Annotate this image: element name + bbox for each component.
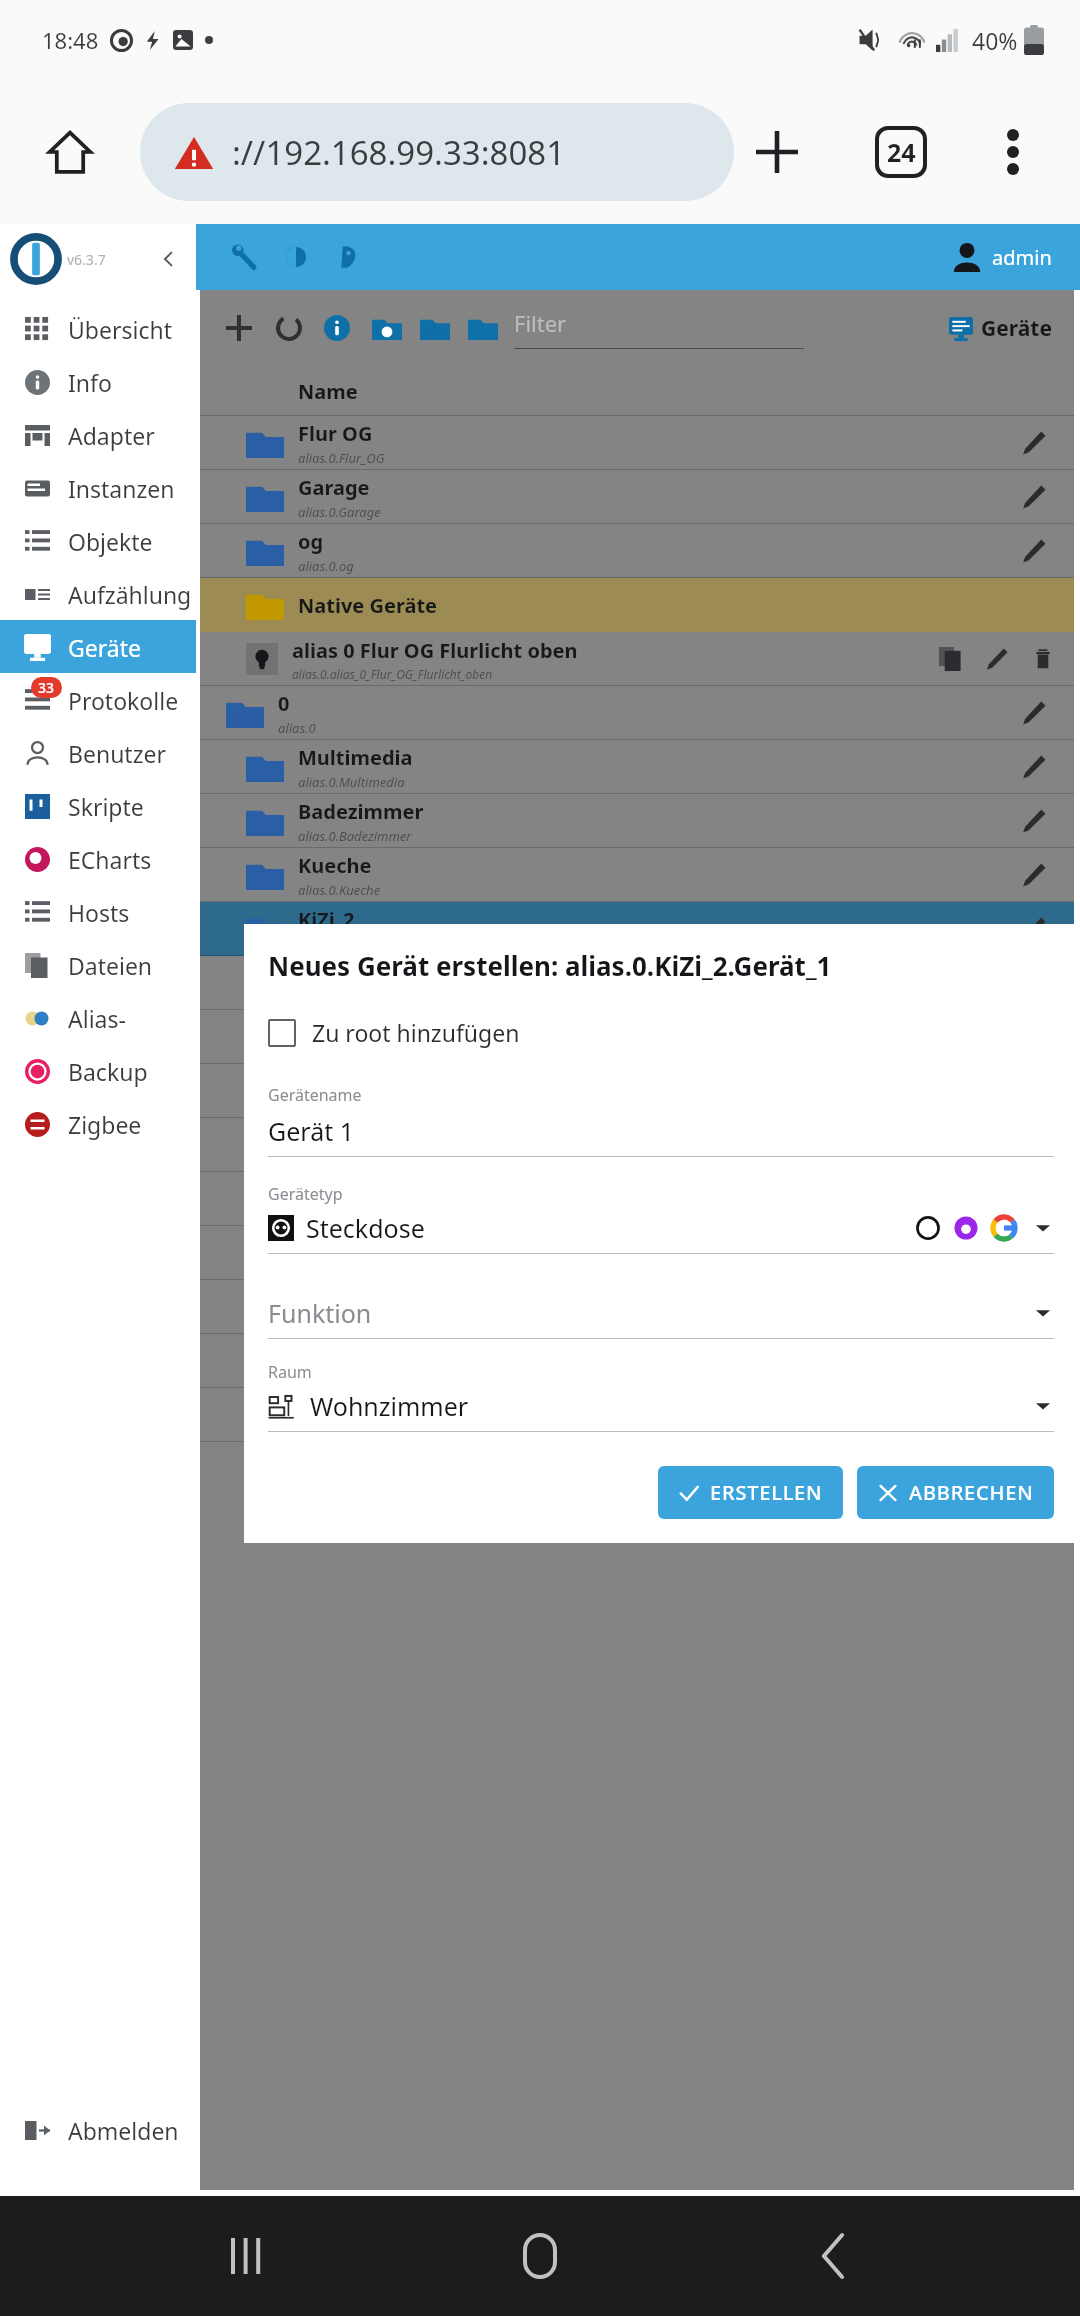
button[interactable]: Multimedia (200, 740, 1074, 794)
button[interactable]: Kueche (200, 848, 1074, 902)
button[interactable]: New tab (734, 109, 820, 195)
button[interactable]: Edit (1008, 1335, 1060, 1387)
button[interactable]: Edit (1008, 1173, 1060, 1225)
button[interactable]: 33 (0, 673, 196, 726)
button[interactable]: Edit og (1008, 525, 1060, 577)
staticText: Raum (268, 1361, 312, 1383)
staticText: Netzwerk (298, 1392, 396, 1419)
button[interactable]: Wohnzimmer (268, 1389, 1054, 1423)
button[interactable]: ERSTELLEN (658, 1466, 843, 1519)
button[interactable]: og (200, 524, 1074, 578)
button[interactable]: Benutzer (0, 726, 196, 779)
button[interactable]: Copy alias 0 Flur OG Flurlicht oben (928, 636, 974, 682)
button[interactable]: Edit (1008, 1281, 1060, 1333)
button[interactable]: More options (970, 109, 1056, 195)
staticText: alias 0 Flur OG Flurlicht oben (292, 637, 578, 664)
button[interactable]: Abmelden (0, 2103, 196, 2156)
button[interactable]: Instanzen (0, 461, 196, 514)
staticText: Flur OG (298, 420, 373, 447)
button[interactable]: Edit (200, 1280, 1074, 1334)
button[interactable]: Edit (200, 1334, 1074, 1388)
button[interactable]: Settings (222, 235, 266, 279)
staticText: 18:48 (42, 25, 99, 55)
button[interactable]: Edit (1008, 1119, 1060, 1171)
button[interactable]: Edit Kueche (1008, 849, 1060, 901)
button[interactable]: Fensterkontakt KiZi 2 2 (200, 956, 1074, 1010)
staticText: Protokolle (68, 685, 179, 716)
button[interactable]: Edit (200, 1172, 1074, 1226)
button[interactable]: ://192.168.99.33:8081 (140, 103, 734, 201)
button[interactable]: Edit Badezimmer (1008, 795, 1060, 847)
button[interactable]: Aufzählungen (0, 567, 196, 620)
button[interactable]: Collapse menu (152, 242, 186, 276)
staticText: Geräte (68, 632, 141, 663)
button[interactable]: Geräte (0, 620, 196, 673)
staticText: alias.0.Kueche (298, 881, 381, 899)
button[interactable]: Recent apps (203, 2211, 293, 2301)
button[interactable]: Heizung KiZi 2 (200, 1010, 1074, 1064)
button[interactable]: Hosts (0, 885, 196, 938)
button[interactable]: Zigbee (0, 1097, 196, 1150)
button[interactable]: Expert mode (326, 235, 370, 279)
button[interactable]: Edit alias 0 Flur OG Flurlicht oben (974, 636, 1020, 682)
button[interactable]: Zu root hinzufügen (268, 1017, 520, 1048)
button[interactable]: Dateien (0, 938, 196, 991)
button[interactable]: Geräte (949, 314, 1052, 343)
button[interactable]: Objekte (0, 514, 196, 567)
staticText: Wohnzimmer (310, 1389, 469, 1423)
button[interactable]: Edit (200, 1226, 1074, 1280)
button[interactable]: Gerät 1 (268, 1114, 1054, 1148)
button[interactable]: Native Geräte (200, 578, 1074, 632)
button[interactable]: Edit Garage (1008, 471, 1060, 523)
button[interactable]: Theme (274, 235, 318, 279)
button[interactable]: Badezimmer (200, 794, 1074, 848)
button[interactable]: KiZi_2 (200, 902, 1074, 956)
button[interactable]: Edit Flur OG (1008, 417, 1060, 469)
staticText: Alias-Manager (68, 1003, 196, 1034)
button[interactable]: ABBRECHEN (857, 1466, 1054, 1519)
button[interactable]: alias 0 Flur OG Flurlicht oben (200, 632, 1074, 686)
button[interactable]: Backup (0, 1044, 196, 1097)
button[interactable]: Flur OG (200, 416, 1074, 470)
staticText: Gerätetyp (268, 1183, 343, 1205)
button[interactable]: Steckdose (268, 1211, 1054, 1245)
staticText: Hosts (68, 897, 130, 928)
button[interactable]: Funktion (268, 1296, 1054, 1330)
button[interactable]: Tabs: 24 (858, 109, 944, 195)
button[interactable]: admin (940, 236, 1064, 278)
button[interactable]: Delete alias 0 Flur OG Flurlicht oben (1020, 636, 1066, 682)
button[interactable]: Info (0, 355, 196, 408)
button[interactable]: Edit Netzwerk (1008, 1389, 1060, 1441)
button[interactable]: Edit (200, 1118, 1074, 1172)
button[interactable]: Alias-Manager (0, 991, 196, 1044)
staticText: alias.0.Flur_OG (298, 449, 385, 467)
staticText: Adapter (68, 420, 155, 451)
button[interactable]: Skripte (0, 779, 196, 832)
button[interactable]: Garage (200, 470, 1074, 524)
staticText: Badezimmer (298, 798, 424, 825)
button[interactable]: Edit Multimedia (1008, 741, 1060, 793)
button[interactable]: 0 (200, 686, 1074, 740)
button[interactable]: Übersicht (0, 302, 196, 355)
button[interactable]: Back (788, 2211, 878, 2301)
staticText: admin (992, 244, 1052, 271)
button[interactable]: Adapter (0, 408, 196, 461)
button[interactable]: Edit KiZi_2 (1008, 903, 1060, 955)
button[interactable]: Edit (200, 1064, 1074, 1118)
button[interactable]: Home (0, 80, 140, 224)
button[interactable]: Home (495, 2211, 585, 2301)
button[interactable]: Edit 0 (1008, 687, 1060, 739)
button[interactable]: Netzwerk (200, 1388, 1074, 1442)
staticText: Aufzählungen (68, 579, 196, 610)
button[interactable]: ECharts (0, 832, 196, 885)
button[interactable]: Edit (1008, 1227, 1060, 1279)
